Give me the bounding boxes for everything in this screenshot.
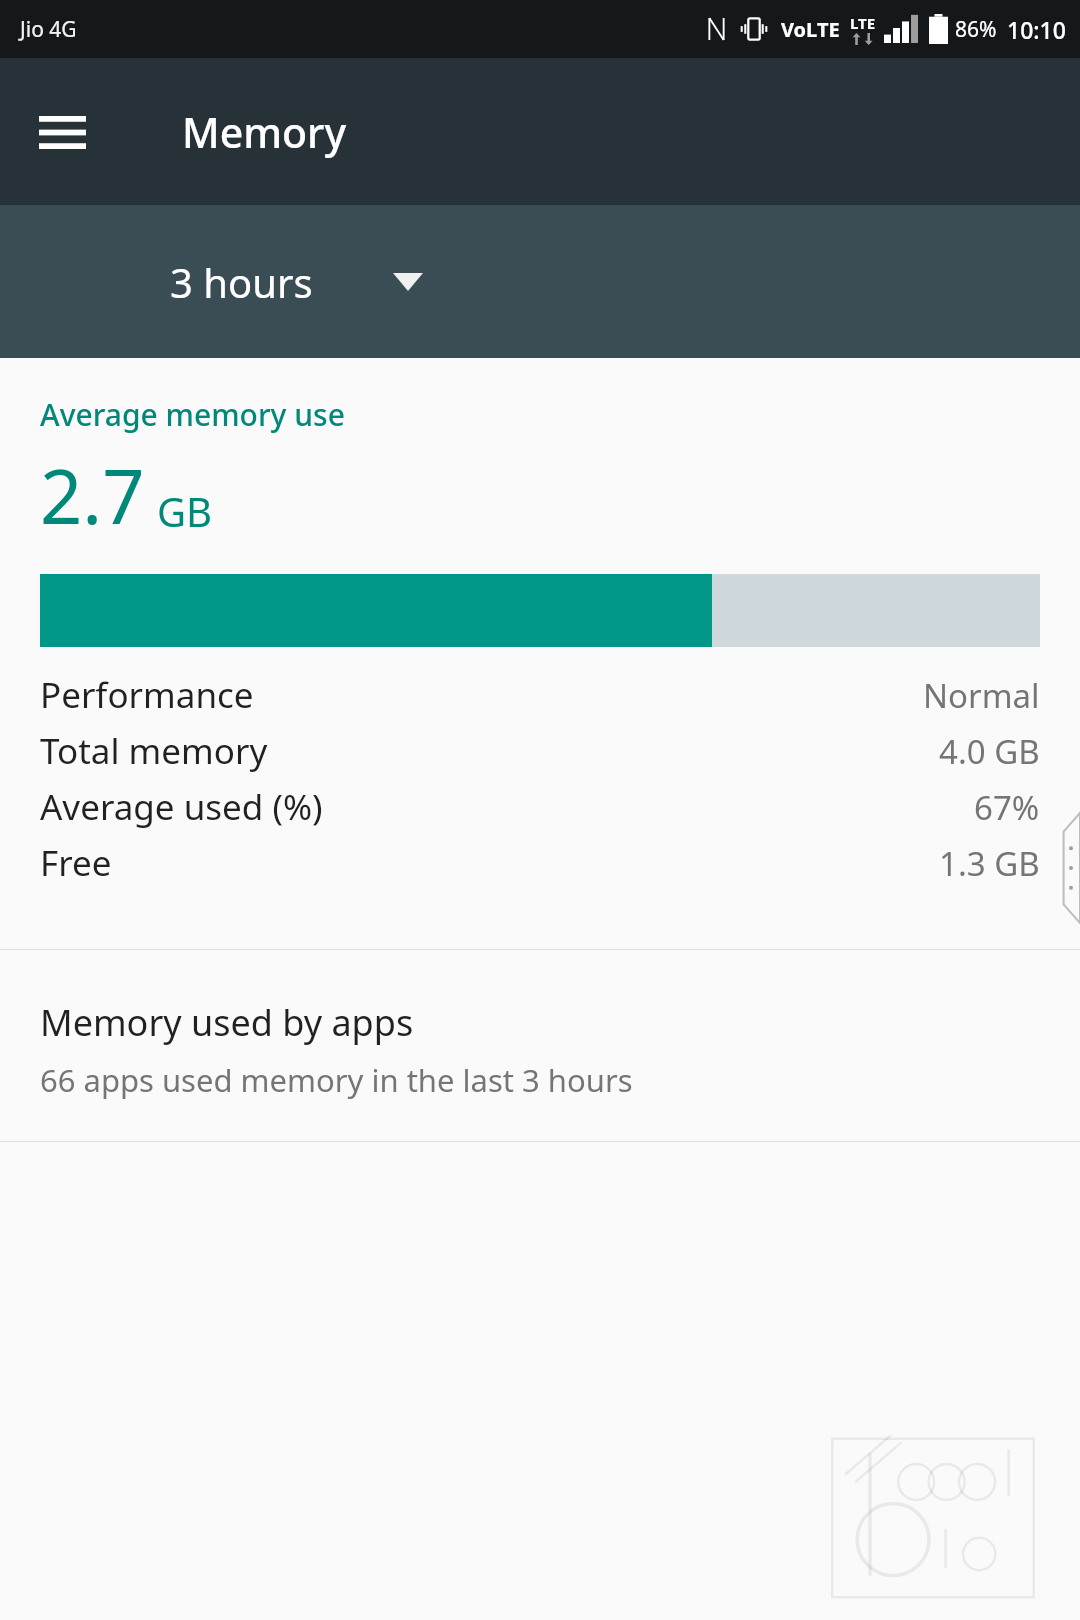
button[interactable]: Open navigation drawer — [28, 98, 96, 166]
staticText: Normal — [923, 673, 1040, 718]
button[interactable]: 3 hours — [170, 255, 423, 309]
staticText: Memory used by apps — [40, 998, 414, 1047]
button[interactable]: Total memory — [0, 723, 1080, 779]
button[interactable]: Free — [0, 835, 1080, 891]
staticText: GB — [157, 484, 213, 538]
staticText: 86% — [955, 15, 997, 44]
staticText: VoLTE — [781, 16, 840, 43]
staticText: 2.7 — [40, 445, 145, 546]
staticText: 66 apps used memory in the last 3 hours — [40, 1059, 633, 1101]
staticText: 4.0 GB — [939, 729, 1040, 774]
staticText: Memory — [182, 104, 347, 160]
button[interactable]: Average used (%) — [0, 779, 1080, 835]
staticText: 3 hours — [170, 255, 313, 309]
staticText: Average used (%) — [40, 783, 323, 831]
button[interactable]: Scroll — [1060, 813, 1080, 923]
staticText: Total memory — [40, 727, 268, 775]
staticText: Average memory use — [40, 394, 345, 435]
staticText: 10:10 — [1007, 14, 1066, 45]
staticText: 1.3 GB — [939, 841, 1040, 886]
button[interactable]: Performance — [0, 667, 1080, 723]
button[interactable]: Memory used by apps — [0, 950, 1080, 1141]
staticText: LTE — [850, 13, 876, 33]
staticText: Performance — [40, 671, 254, 719]
staticText: Free — [40, 839, 112, 887]
staticText: Jio 4G — [20, 15, 77, 44]
staticText: 67% — [974, 785, 1040, 830]
